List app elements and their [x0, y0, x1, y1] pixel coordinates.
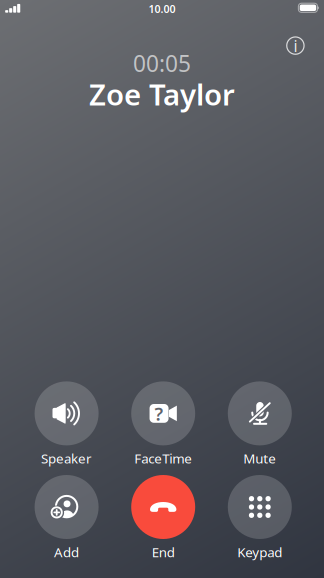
button[interactable]: Keypad	[212, 475, 308, 563]
staticText: Mute	[243, 449, 276, 467]
button[interactable]: Add	[19, 475, 115, 563]
button[interactable]: Mute	[212, 381, 308, 469]
staticText: Keypad	[237, 543, 282, 561]
staticText: Add	[54, 543, 79, 561]
staticText: Speaker	[41, 449, 92, 467]
staticText: i	[293, 35, 297, 56]
button[interactable]: ?	[115, 381, 211, 469]
button[interactable]: Speaker	[19, 381, 115, 469]
staticText: End	[152, 543, 175, 561]
button[interactable]: Call info	[280, 31, 310, 61]
staticText: Zoe Taylor	[89, 74, 235, 113]
staticText: 10.00	[148, 2, 175, 16]
staticText: ?	[154, 401, 163, 426]
staticText: FaceTime	[134, 449, 192, 467]
button[interactable]: End	[115, 475, 211, 563]
staticText: 00:05	[133, 48, 191, 78]
